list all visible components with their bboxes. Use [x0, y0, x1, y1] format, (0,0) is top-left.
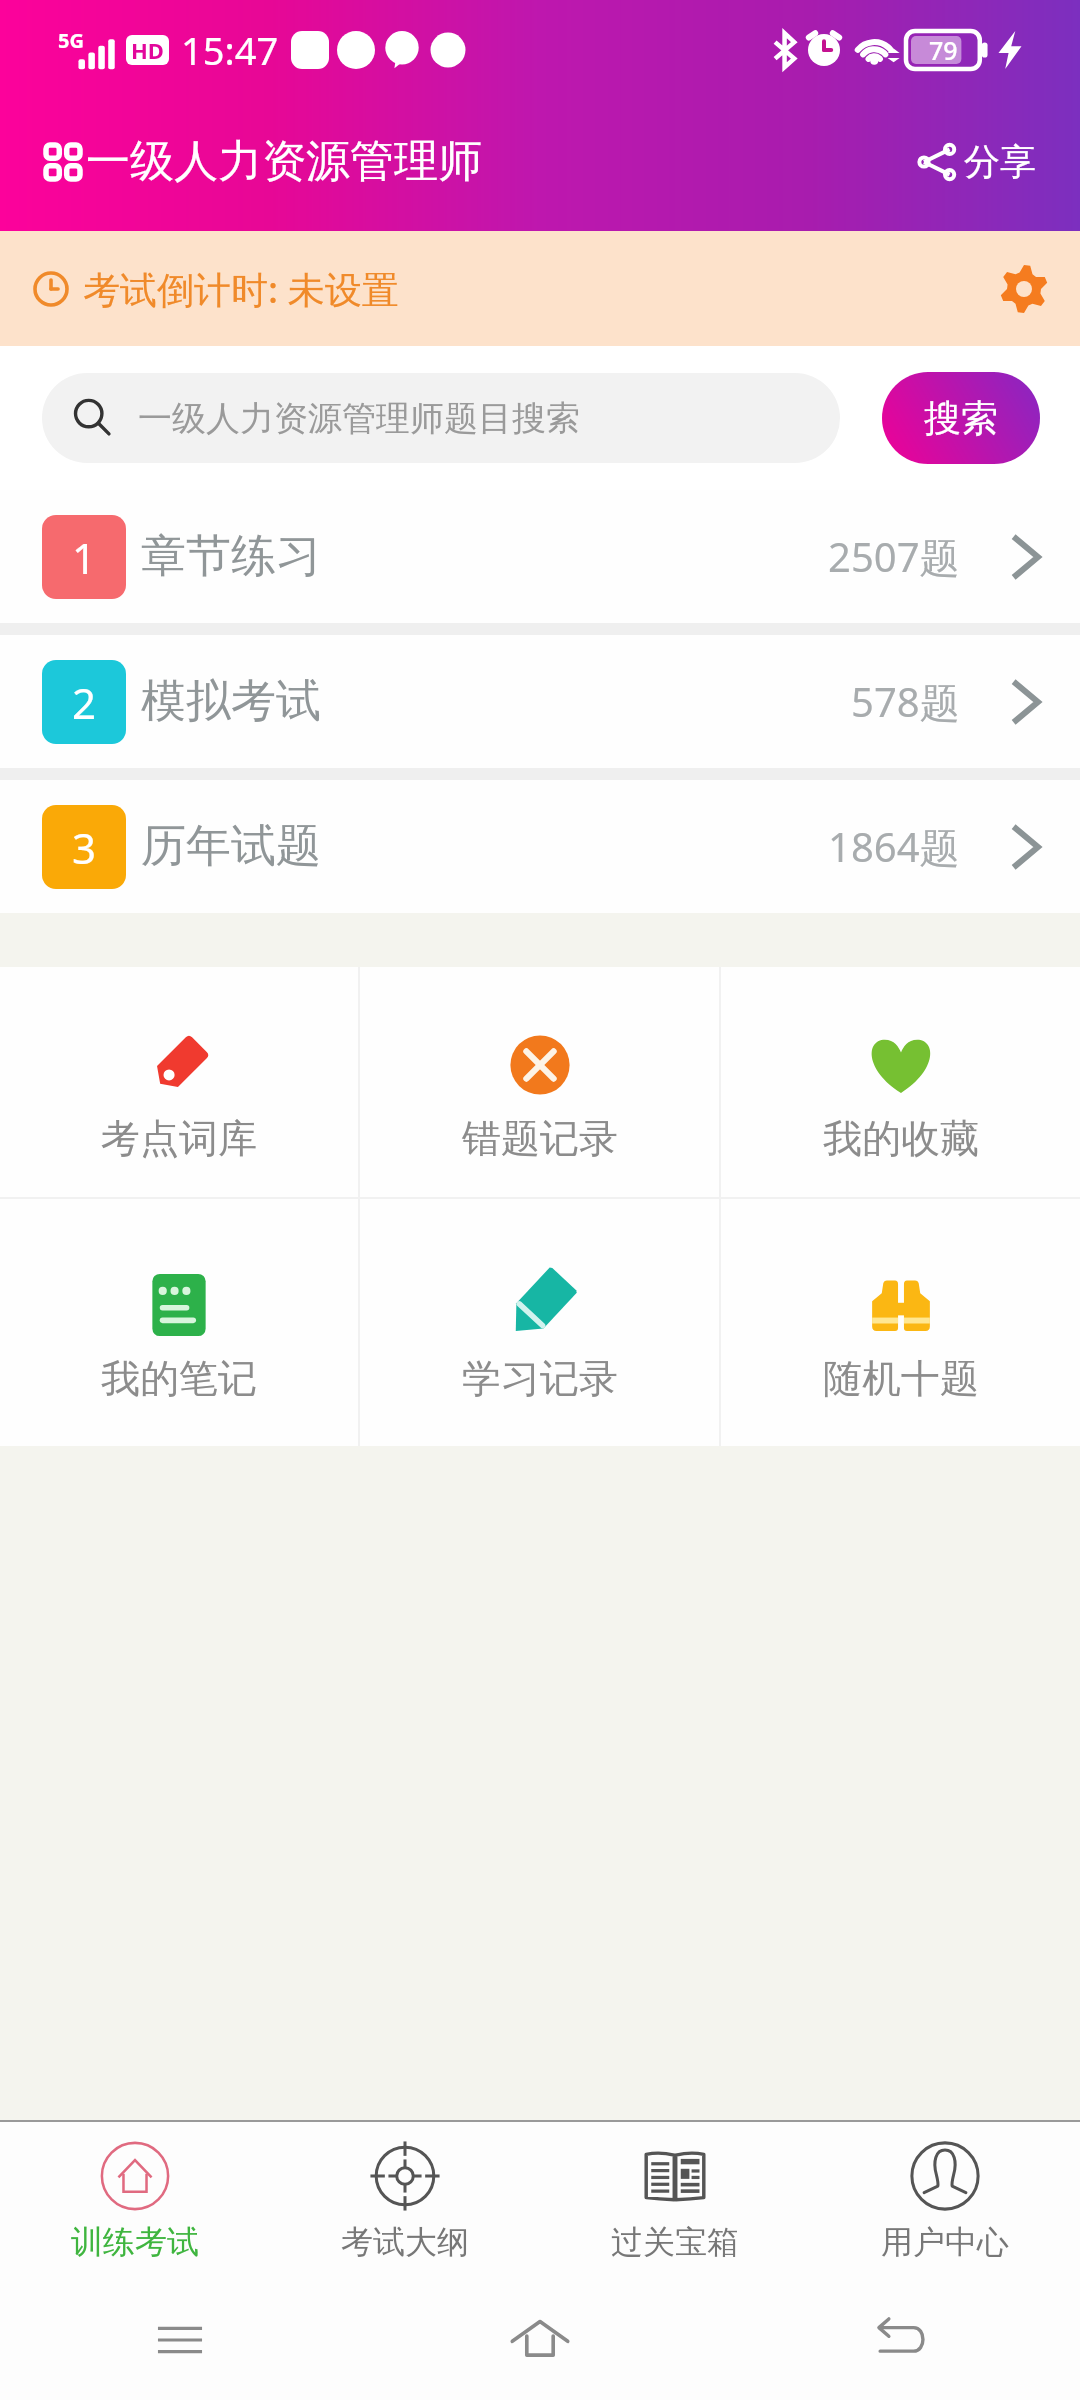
staticText: 搜索 — [924, 395, 998, 442]
staticText: 一级人力资源管理师题目搜索 — [138, 397, 580, 440]
staticText: 用户中心 — [881, 2222, 1009, 2262]
button[interactable]: Back — [869, 2309, 931, 2371]
staticText: 79 — [929, 33, 958, 67]
button[interactable]: 学习记录 — [360, 1199, 719, 1446]
button[interactable]: 2 — [0, 635, 1080, 768]
staticText: 考点词库 — [101, 1114, 257, 1163]
button[interactable]: 考试大纲 — [270, 2122, 540, 2280]
staticText: 历年试题 — [141, 818, 321, 875]
button[interactable]: Menu — [44, 124, 482, 199]
staticText: 5G — [58, 27, 84, 54]
button[interactable]: 分享 — [908, 131, 1044, 192]
button[interactable]: 用户中心 — [810, 2122, 1080, 2280]
staticText: 随机十题 — [823, 1354, 979, 1403]
staticText: 1 — [72, 529, 97, 586]
staticText: HD — [131, 35, 164, 65]
button[interactable]: 3 — [0, 780, 1080, 913]
staticText: 训练考试 — [71, 2222, 199, 2262]
button[interactable]: 我的收藏 — [721, 967, 1080, 1197]
button[interactable]: 搜索 — [882, 372, 1040, 464]
button[interactable]: Home — [507, 2307, 573, 2373]
staticText: 我的收藏 — [823, 1114, 979, 1163]
staticText: 1864题 — [828, 819, 960, 874]
button[interactable]: 考试倒计时: 未设置 — [0, 231, 1080, 346]
staticText: 我的笔记 — [101, 1354, 257, 1403]
button[interactable]: 我的笔记 — [0, 1199, 358, 1446]
button[interactable]: Settings — [996, 261, 1052, 317]
button[interactable]: 错题记录 — [360, 967, 719, 1197]
staticText: 3 — [72, 819, 97, 876]
staticText: 错题记录 — [462, 1114, 618, 1163]
staticText: 章节练习 — [141, 528, 321, 585]
staticText: 模拟考试 — [141, 673, 321, 730]
staticText: 学习记录 — [462, 1354, 618, 1403]
staticText: 578题 — [851, 674, 960, 729]
button[interactable]: 考点词库 — [0, 967, 358, 1197]
staticText: 2507题 — [828, 529, 960, 584]
staticText: 分享 — [964, 139, 1036, 184]
staticText: 2 — [72, 674, 97, 731]
button[interactable]: 训练考试 — [0, 2122, 270, 2280]
button[interactable]: 随机十题 — [721, 1199, 1080, 1446]
button[interactable]: 过关宝箱 — [540, 2122, 810, 2280]
other: Menu — [44, 143, 82, 181]
staticText: 一级人力资源管理师 — [86, 134, 482, 189]
staticText: 过关宝箱 — [611, 2222, 739, 2262]
staticText: 考试大纲 — [341, 2222, 469, 2262]
button[interactable]: 一级人力资源管理师题目搜索 — [42, 373, 840, 463]
button[interactable]: 1 — [0, 490, 1080, 623]
staticText: 考试倒计时: 未设置 — [83, 263, 399, 314]
staticText: 15:47 — [181, 24, 279, 76]
button[interactable]: Recents — [151, 2311, 209, 2369]
